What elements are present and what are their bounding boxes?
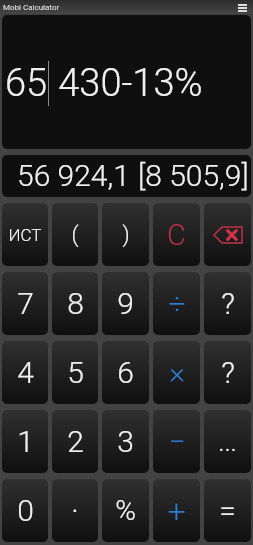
staticText: 2 <box>67 424 84 459</box>
staticText: [8 505,9] <box>138 158 249 193</box>
staticText: 0 <box>17 493 34 528</box>
button[interactable]: ИСТ <box>2 203 48 266</box>
staticText: 7 <box>17 286 34 321</box>
staticText: % <box>115 494 136 527</box>
button[interactable]: − <box>153 410 200 473</box>
button[interactable]: ? <box>204 272 251 335</box>
button[interactable]: 1 <box>2 410 48 473</box>
staticText: 6 <box>117 355 134 390</box>
staticText: C <box>167 218 186 252</box>
staticText: 1 <box>17 424 34 459</box>
staticText: 430-13% <box>49 61 203 106</box>
button[interactable]: 8 <box>52 272 98 335</box>
button[interactable]: 3 <box>102 410 149 473</box>
button[interactable]: + <box>153 479 200 542</box>
button[interactable]: 6 <box>102 341 149 404</box>
button[interactable]: % <box>102 479 149 542</box>
staticText: ? <box>221 286 235 321</box>
staticText: · <box>71 493 79 528</box>
button[interactable]: C <box>153 203 200 266</box>
button[interactable]: · <box>52 479 98 542</box>
staticText: − <box>168 424 186 459</box>
staticText: 4 <box>17 355 34 390</box>
button[interactable]: 5 <box>52 341 98 404</box>
staticText: 3 <box>117 424 134 459</box>
staticText: 65 <box>5 61 48 106</box>
staticText: ... <box>218 427 237 457</box>
button[interactable]: ( <box>52 203 98 266</box>
staticText: 9 <box>117 286 134 321</box>
button[interactable]: ) <box>102 203 149 266</box>
button[interactable]: ? <box>204 341 251 404</box>
staticText: = <box>219 493 236 528</box>
button[interactable]: Backspace <box>204 203 251 266</box>
staticText: 8 <box>67 286 84 321</box>
button[interactable]: 7 <box>2 272 48 335</box>
button[interactable]: Menu <box>235 1 249 15</box>
button[interactable]: ÷ <box>153 272 200 335</box>
staticText: ) <box>122 222 130 248</box>
staticText: ? <box>221 355 235 390</box>
staticText: ÷ <box>168 286 186 321</box>
staticText: 56 924,1 <box>17 158 130 193</box>
button[interactable]: 0 <box>2 479 48 542</box>
button[interactable]: 2 <box>52 410 98 473</box>
button[interactable]: 4 <box>2 341 48 404</box>
staticText: ( <box>71 222 79 248</box>
button[interactable]: 56 924,1 <box>2 155 251 197</box>
staticText: ИСТ <box>8 225 42 245</box>
staticText: + <box>167 492 186 530</box>
button[interactable]: = <box>204 479 251 542</box>
button[interactable]: 9 <box>102 272 149 335</box>
staticText: 5 <box>67 355 84 390</box>
staticText: Mobi Calculator <box>3 3 60 12</box>
button[interactable]: ... <box>204 410 251 473</box>
staticText: × <box>169 355 185 390</box>
button[interactable]: 65 <box>2 15 251 149</box>
button[interactable]: × <box>153 341 200 404</box>
